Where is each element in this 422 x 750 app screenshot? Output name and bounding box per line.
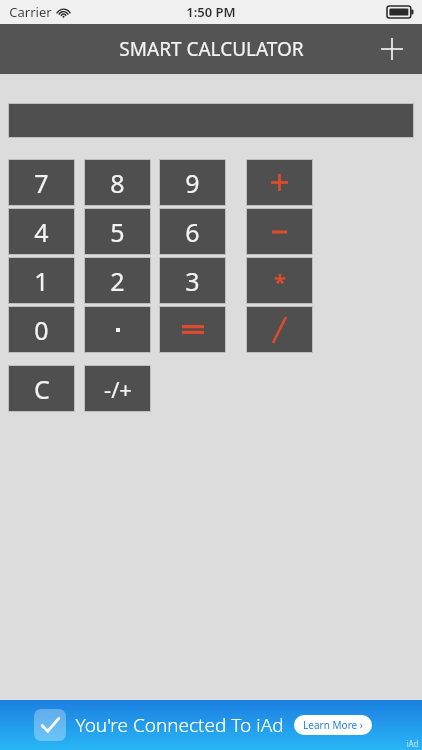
button[interactable]: 4	[8, 208, 75, 255]
button[interactable]: 8	[84, 159, 151, 206]
button[interactable]: 9	[159, 159, 226, 206]
staticText: 6	[185, 215, 200, 249]
staticText: 5	[110, 215, 125, 249]
button[interactable]: 0	[8, 306, 75, 353]
staticText: 3	[185, 264, 200, 298]
staticText: C	[34, 372, 50, 406]
staticText: 4	[34, 215, 49, 249]
button[interactable]	[246, 208, 313, 255]
button[interactable]: -/+	[84, 365, 151, 412]
staticText: Learn More ›	[303, 718, 363, 732]
staticText: 0	[34, 313, 49, 347]
button[interactable]: *	[246, 257, 313, 304]
button[interactable]: 6	[159, 208, 226, 255]
staticText: 1:50 PM	[186, 3, 236, 21]
button[interactable]: Display	[8, 103, 414, 138]
staticText: -/+	[104, 374, 132, 404]
button[interactable]: 2	[84, 257, 151, 304]
button[interactable]	[246, 159, 313, 206]
button[interactable]: C	[8, 365, 75, 412]
staticText: 2	[110, 264, 125, 298]
button[interactable]	[246, 306, 313, 353]
button[interactable]: 3	[159, 257, 226, 304]
staticText: Carrier	[9, 3, 52, 21]
staticText: 7	[34, 166, 49, 200]
staticText: iAd	[406, 738, 419, 749]
button[interactable]	[84, 306, 151, 353]
staticText: *	[274, 266, 286, 296]
staticText: SMART CALCULATOR	[119, 36, 304, 62]
button[interactable]: 7	[8, 159, 75, 206]
button[interactable]	[159, 306, 226, 353]
staticText: 1	[34, 264, 49, 298]
button[interactable]: 5	[84, 208, 151, 255]
staticText: 8	[110, 166, 125, 200]
button[interactable]: Add	[370, 27, 414, 71]
button[interactable]: Learn More ›	[294, 715, 372, 735]
staticText: You're Connected To iAd	[75, 712, 284, 738]
button[interactable]: 1	[8, 257, 75, 304]
staticText: 9	[185, 166, 200, 200]
button[interactable]: You're Connected To iAd	[0, 700, 422, 750]
